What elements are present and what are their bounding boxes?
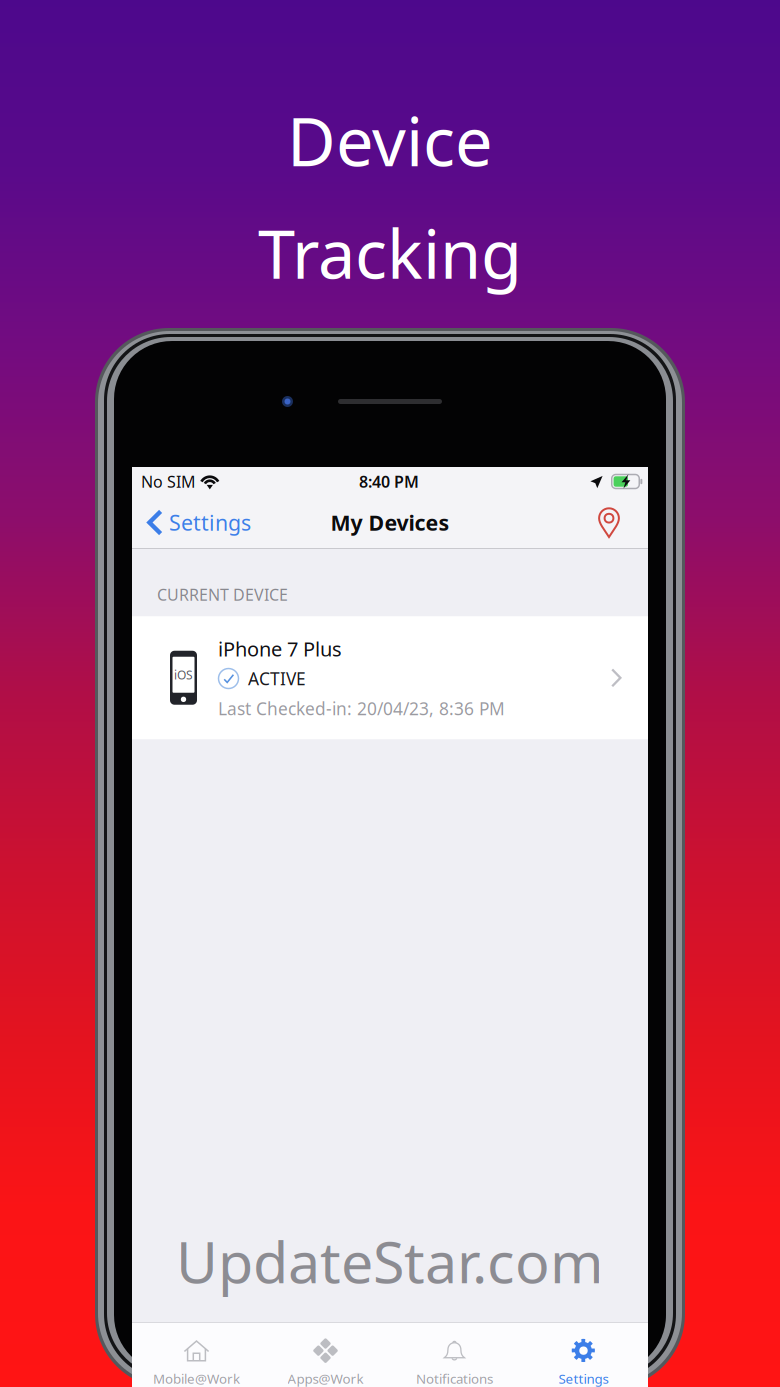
- staticText: Settings: [558, 1370, 608, 1387]
- button[interactable]: iOS: [132, 616, 648, 739]
- staticText: Notifications: [416, 1370, 493, 1387]
- staticText: Apps@Work: [287, 1370, 363, 1387]
- button[interactable]: Settings: [519, 1322, 648, 1387]
- staticText: CURRENT DEVICE: [157, 584, 288, 605]
- staticText: Device: [287, 96, 493, 184]
- staticText: iPhone 7 Plus: [218, 635, 342, 662]
- button[interactable]: Mobile@Work: [132, 1322, 261, 1387]
- staticText: 8:40 PM: [359, 471, 419, 492]
- button[interactable]: Apps@Work: [261, 1322, 390, 1387]
- button[interactable]: Notifications: [390, 1322, 519, 1387]
- staticText: Settings: [169, 508, 251, 537]
- staticText: Mobile@Work: [153, 1370, 240, 1387]
- staticText: ACTIVE: [248, 667, 306, 690]
- staticText: My Devices: [330, 508, 449, 537]
- staticText: No SIM: [141, 471, 196, 492]
- staticText: iOS: [174, 667, 193, 683]
- staticText: Tracking: [258, 208, 522, 297]
- staticText: UpdateStar.com: [176, 1223, 604, 1299]
- staticText: Last Checked-in: 20/04/23, 8:36 PM: [218, 697, 505, 720]
- button[interactable]: Location: [584, 496, 648, 549]
- button[interactable]: Settings: [132, 496, 261, 549]
